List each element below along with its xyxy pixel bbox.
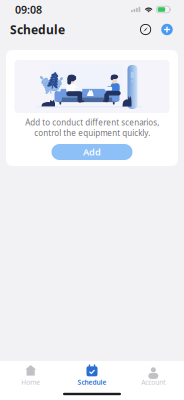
- staticText: 09:08: [15, 2, 42, 17]
- button[interactable]: Add: [160, 22, 174, 36]
- staticText: Add: [83, 146, 101, 158]
- button[interactable]: Scenes: [139, 22, 160, 36]
- staticText: Account: [141, 378, 165, 387]
- staticText: Home: [21, 378, 40, 387]
- button[interactable]: Schedule: [61, 358, 123, 391]
- button[interactable]: Account: [123, 358, 184, 391]
- staticText: Schedule: [77, 378, 106, 387]
- button[interactable]: Home: [0, 358, 61, 391]
- staticText: Add to conduct different scenarios, cont…: [25, 117, 159, 138]
- staticText: Schedule: [10, 21, 65, 37]
- button[interactable]: Add: [51, 144, 132, 160]
